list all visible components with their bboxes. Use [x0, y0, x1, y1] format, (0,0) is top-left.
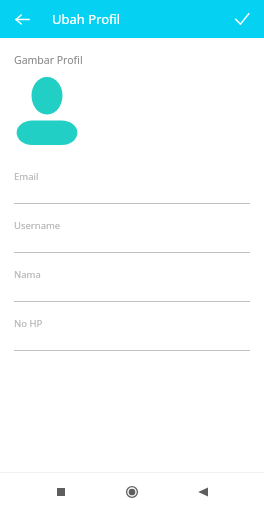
button[interactable]: Profile picture	[16, 77, 78, 145]
staticText: Gambar Profil	[14, 53, 83, 67]
button[interactable]: Recent apps	[46, 477, 76, 507]
staticText: Email	[14, 170, 39, 183]
staticText: Ubah Profil	[52, 10, 121, 28]
staticText: Username	[14, 219, 61, 232]
button[interactable]: Username	[0, 212, 264, 261]
staticText: Nama	[14, 268, 41, 281]
button[interactable]: Nama	[0, 261, 264, 310]
button[interactable]: Back	[188, 477, 218, 507]
button[interactable]: Save	[226, 3, 258, 35]
button[interactable]: Home	[117, 477, 147, 507]
button[interactable]: Email	[0, 163, 264, 212]
button[interactable]: No HP	[0, 310, 264, 359]
staticText: No HP	[14, 317, 43, 330]
button[interactable]: Back	[6, 3, 38, 35]
